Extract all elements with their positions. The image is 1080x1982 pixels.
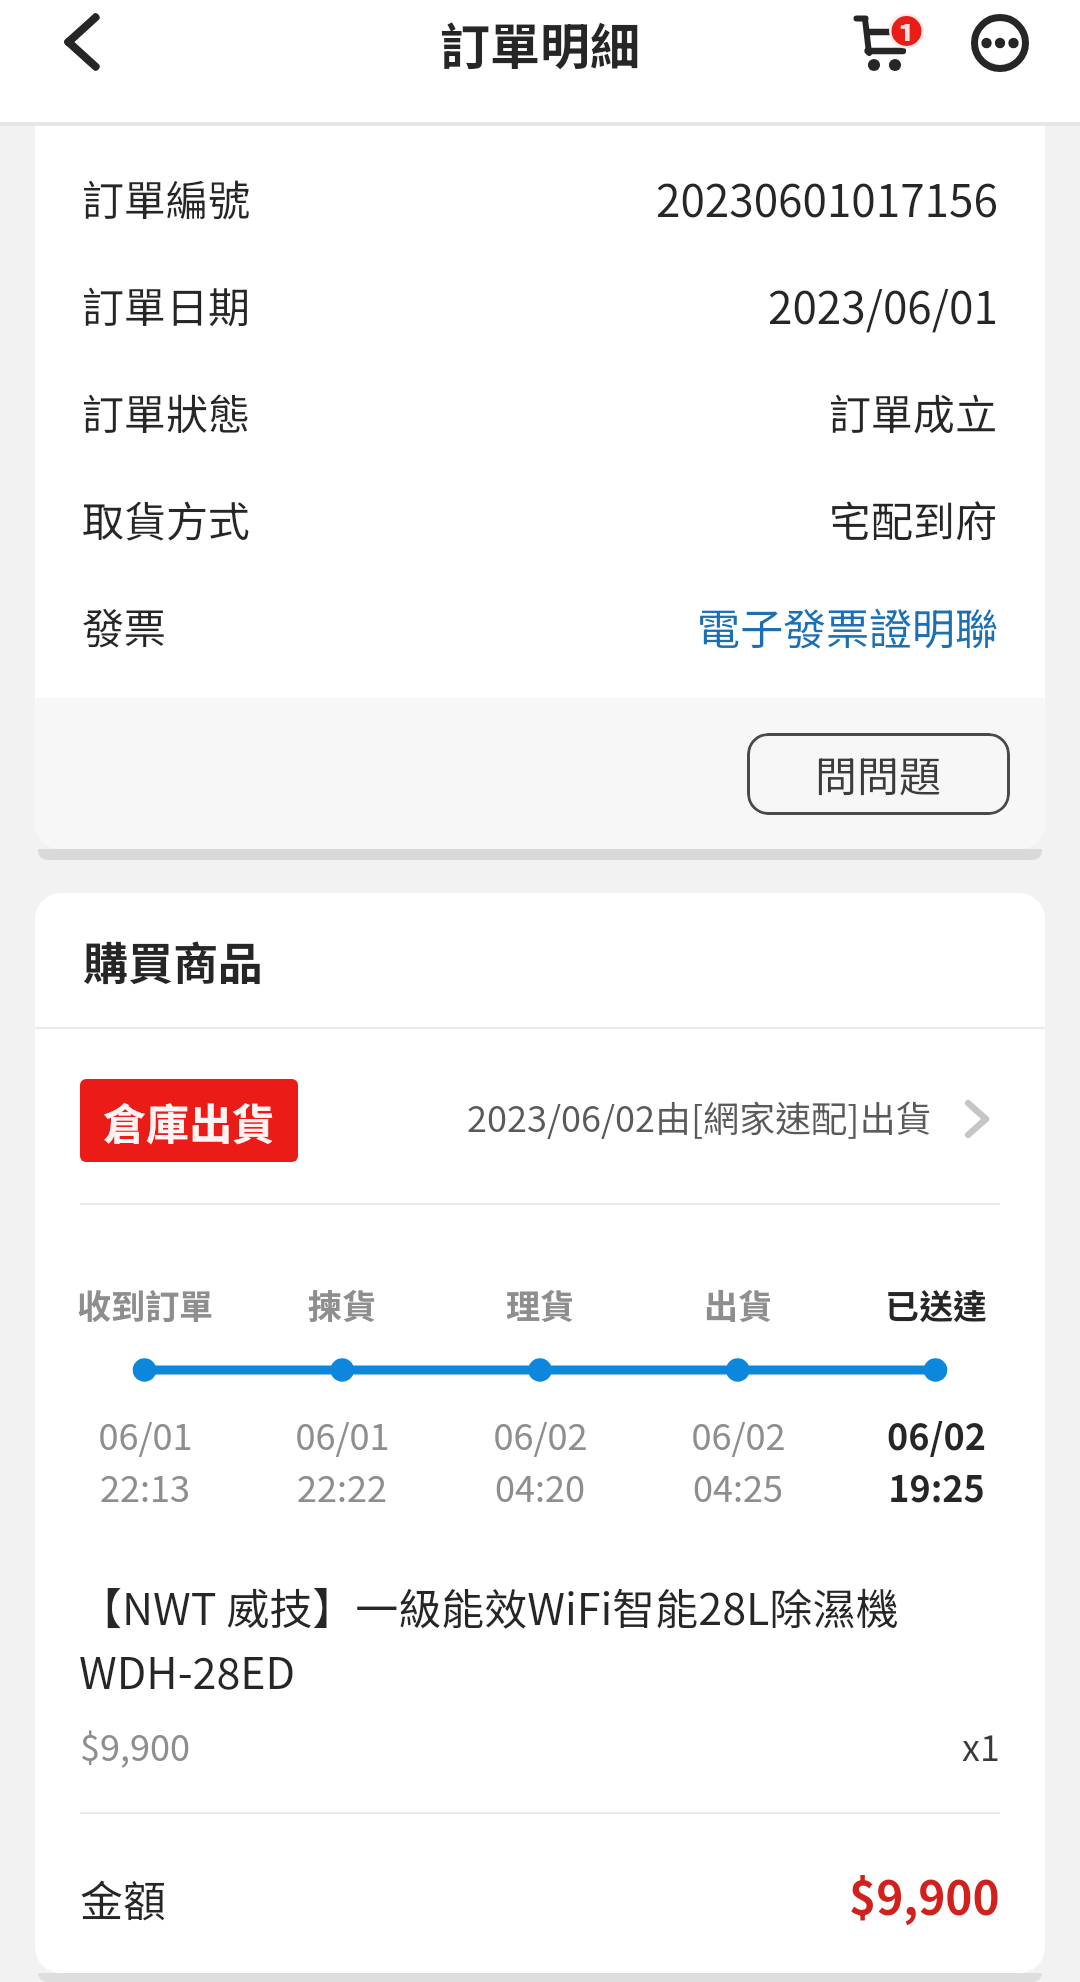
staticText: 已送達 bbox=[885, 1280, 987, 1324]
button[interactable]: Back bbox=[46, 6, 118, 78]
button[interactable]: 倉庫出貨 bbox=[35, 1029, 1045, 1203]
staticText: 04:25 bbox=[693, 1460, 783, 1512]
staticText: 理貨 bbox=[506, 1280, 574, 1324]
staticText: 06/02 bbox=[691, 1408, 786, 1460]
staticText: 取貨方式 bbox=[82, 488, 251, 549]
staticText: 宅配到府 bbox=[829, 488, 998, 549]
staticText: 06/02 bbox=[493, 1408, 588, 1460]
staticText: $9,900 bbox=[849, 1862, 1000, 1929]
staticText: 揀貨 bbox=[308, 1280, 376, 1324]
staticText: 訂單編號 bbox=[82, 167, 251, 228]
staticText: 金額 bbox=[80, 1867, 166, 1929]
staticText: 2023/06/02由[網家速配]出貨 bbox=[467, 1090, 932, 1142]
button[interactable]: Shopping cart bbox=[846, 6, 926, 82]
button[interactable]: 電子發票證明聯 bbox=[697, 572, 998, 679]
staticText: 訂單成立 bbox=[829, 381, 998, 442]
button[interactable]: 問問題 bbox=[747, 733, 1010, 815]
staticText: 購買商品 bbox=[83, 928, 264, 993]
staticText: 問問題 bbox=[815, 743, 942, 804]
staticText: 06/01 bbox=[295, 1408, 390, 1460]
staticText: 電子發票證明聯 bbox=[697, 595, 998, 657]
staticText: 20230601017156 bbox=[656, 166, 998, 230]
staticText: 1 bbox=[897, 11, 916, 41]
staticText: 04:20 bbox=[495, 1460, 585, 1512]
staticText: 倉庫出貨 bbox=[103, 1090, 275, 1152]
staticText: 訂單明細 bbox=[440, 7, 640, 79]
staticText: 06/02 bbox=[887, 1408, 986, 1460]
staticText: 訂單日期 bbox=[82, 274, 251, 335]
staticText: 22:13 bbox=[100, 1460, 190, 1512]
staticText: 19:25 bbox=[888, 1460, 985, 1512]
staticText: 發票 bbox=[82, 595, 167, 656]
staticText: x1 bbox=[962, 1719, 1000, 1771]
staticText: 出貨 bbox=[704, 1280, 772, 1324]
staticText: 22:22 bbox=[297, 1460, 387, 1512]
staticText: 收到訂單 bbox=[77, 1280, 213, 1324]
staticText: 訂單狀態 bbox=[82, 381, 251, 442]
staticText: $9,900 bbox=[80, 1719, 190, 1771]
button[interactable]: More options bbox=[962, 5, 1038, 81]
staticText: 06/01 bbox=[98, 1408, 193, 1460]
staticText: 2023/06/01 bbox=[768, 273, 998, 337]
staticText: 【NWT 威技】一級能效WiFi智能28L除濕機WDH-28ED bbox=[79, 1575, 1001, 1702]
